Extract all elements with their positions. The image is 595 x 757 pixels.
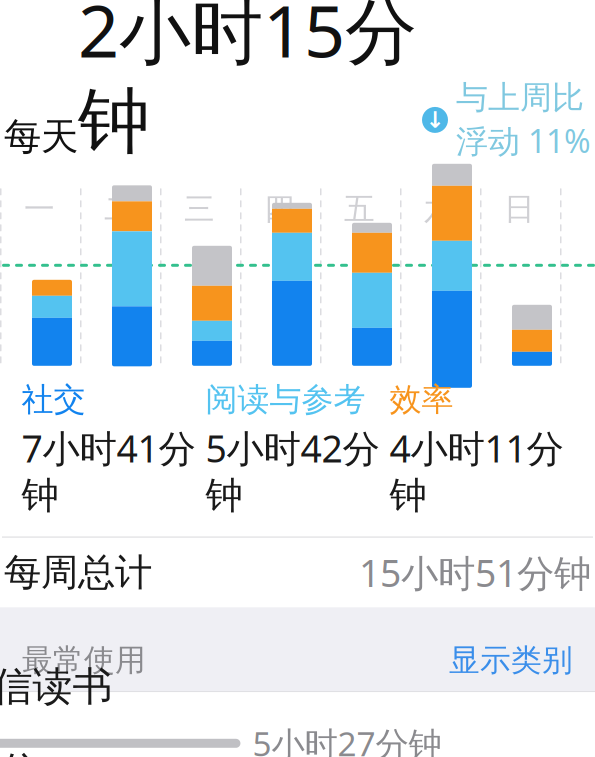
staticText: 一 — [24, 190, 55, 228]
staticText: ↓ — [425, 107, 444, 133]
staticText: 效率 — [389, 380, 453, 419]
staticText: 阅读与参考 — [205, 380, 365, 419]
staticText: 四 — [264, 190, 295, 228]
staticText: 与上周比 — [456, 78, 584, 117]
button[interactable]: 微信读书 — [0, 692, 595, 757]
staticText: 微信 — [0, 747, 40, 757]
staticText: 5小时42分钟 — [205, 423, 379, 518]
staticText: 日 — [504, 190, 535, 228]
staticText: 15小时51分钟 — [359, 548, 591, 597]
staticText: 社交 — [21, 380, 85, 419]
staticText: 5小时27分钟 — [252, 721, 441, 757]
staticText: 六 — [424, 190, 455, 228]
staticText: 每周总计 — [4, 550, 152, 595]
button[interactable]: 显示类别 — [449, 642, 573, 679]
staticText: 显示类别 — [449, 642, 573, 679]
staticText: 4小时11分钟 — [389, 423, 563, 518]
staticText: 二 — [104, 190, 135, 228]
staticText: 三 — [184, 190, 215, 228]
staticText: 每天 — [4, 114, 78, 160]
staticText: 浮动 11% — [456, 119, 591, 162]
staticText: 五 — [344, 190, 375, 228]
staticText: 7小时41分钟 — [21, 423, 195, 518]
staticText: 2小时15分钟 — [78, 0, 417, 166]
staticText: 微信读书 — [0, 662, 112, 711]
staticText: 最常使用 — [22, 642, 146, 679]
